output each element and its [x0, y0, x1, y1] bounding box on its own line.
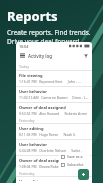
- button[interactable]: User behavior: [16, 140, 92, 155]
- staticText: Reports: [7, 7, 58, 25]
- button[interactable]: File viewing: [16, 71, 92, 86]
- staticText: 8:11:03 PM Hugo Reese Noah S.: [19, 132, 76, 137]
- staticText: File viewing: [19, 73, 43, 78]
- staticText: Yesterday: [19, 118, 35, 123]
- staticText: Save as a report: [67, 154, 88, 159]
- staticText: User editing: [19, 179, 44, 181]
- staticText: Yesterday: [19, 171, 35, 176]
- staticText: 1:16:41 PM Raymond Kent John - ...: [19, 79, 81, 84]
- staticText: Owner of deal assigned: [19, 105, 66, 110]
- button[interactable]: User editing: [16, 124, 92, 139]
- button[interactable]: Menu: [19, 52, 26, 59]
- button[interactable]: Owner of deal assigned: [16, 103, 92, 118]
- button[interactable]: Owner of deal assigned: [16, 156, 92, 171]
- staticText: User editing: [19, 126, 44, 131]
- staticText: Today: [19, 64, 29, 69]
- staticText: Subscribe: [67, 162, 84, 167]
- staticText: Create reports. Find trends.: [7, 28, 91, 37]
- staticText: 9:53:52 PM Alex Howard Roberta Acme: [19, 111, 87, 116]
- button[interactable]: Save as a report: [59, 152, 90, 169]
- button[interactable]: User behavior: [16, 87, 92, 102]
- staticText: Drive your deal forward: [7, 37, 80, 46]
- staticText: 1:08:04 PM Eleana Roberts Bryan K.: [19, 164, 82, 169]
- button[interactable]: User editing: [16, 177, 92, 183]
- staticText: User behavior: [19, 142, 47, 147]
- staticText: Owner of deal assigned: [19, 158, 66, 163]
- staticText: 5:34:28 PM Charlotte Nelson Sailor - cu.…: [19, 148, 89, 153]
- button[interactable]: Filter: [82, 52, 89, 59]
- staticText: Activity log: [28, 53, 53, 59]
- staticText: 11:02:13 AM Cameron Bowen Orion - L...: [19, 95, 89, 100]
- staticText: 10:04: [19, 44, 29, 49]
- staticText: User behavior: [19, 89, 47, 94]
- button[interactable]: Add report: [78, 169, 89, 180]
- button[interactable]: Menu: [19, 50, 89, 61]
